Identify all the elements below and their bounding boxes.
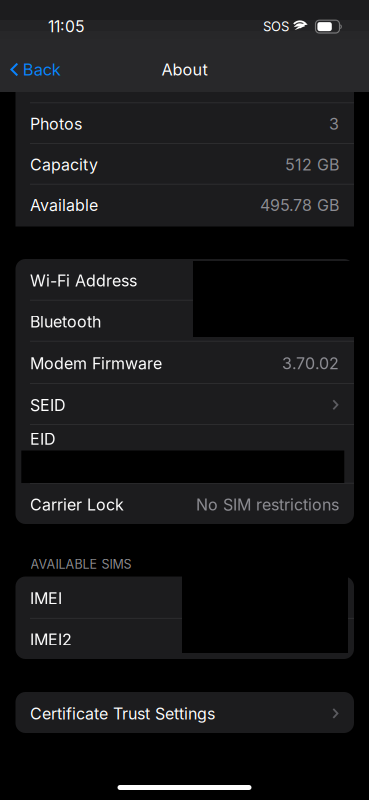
staticText: IMEI (30, 589, 62, 608)
staticText: SEID (30, 395, 66, 415)
staticText: No SIM restrictions (196, 495, 339, 514)
staticText: 3 (329, 114, 339, 134)
staticText: 512 GB (285, 155, 339, 174)
staticText: AVAILABLE SIMS (30, 556, 131, 572)
staticText: Available (30, 195, 98, 215)
staticText: 3.70.02 (282, 354, 339, 373)
staticText: EID (30, 429, 56, 449)
staticText: 495.78 GB (260, 195, 339, 215)
button[interactable]: SEID (15, 383, 354, 424)
staticText: Wi-Fi Address (30, 271, 137, 290)
button[interactable]: Back (2, 52, 69, 86)
button[interactable]: Certificate Trust Settings (15, 692, 354, 733)
staticText: Back (23, 59, 61, 79)
staticText: Carrier Lock (30, 495, 124, 514)
staticText: About (161, 60, 207, 79)
staticText: Bluetooth (30, 312, 101, 331)
staticText: IMEI2 (30, 630, 72, 649)
staticText: Capacity (30, 155, 98, 174)
staticText: Photos (30, 114, 82, 134)
staticText: Certificate Trust Settings (30, 704, 215, 723)
staticText: SOS (263, 18, 289, 34)
staticText: 11:05 (48, 17, 85, 36)
staticText: Modem Firmware (30, 354, 162, 373)
